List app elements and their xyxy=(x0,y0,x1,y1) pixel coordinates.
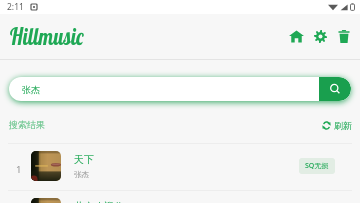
staticText: 张杰 xyxy=(74,170,89,179)
button[interactable]: Home xyxy=(286,24,307,48)
button[interactable]: 1 xyxy=(0,143,360,191)
button[interactable]: Delete xyxy=(335,24,353,48)
staticText: SQ无损 xyxy=(305,161,329,171)
staticText: 1 xyxy=(16,163,22,176)
staticText: 北京欢迎你 xyxy=(74,200,124,203)
staticText: 张杰 xyxy=(22,84,40,95)
staticText: Hillmusic xyxy=(9,21,84,51)
staticText: 天下 xyxy=(74,153,94,166)
staticText: 搜索结果 xyxy=(9,119,45,130)
button[interactable]: Search xyxy=(319,77,351,101)
button[interactable]: 2 xyxy=(0,190,360,203)
staticText: 刷新 xyxy=(334,120,352,131)
button[interactable]: Settings xyxy=(311,24,330,48)
staticText: 2:11 xyxy=(7,1,24,13)
button[interactable]: 刷新 xyxy=(322,120,360,131)
